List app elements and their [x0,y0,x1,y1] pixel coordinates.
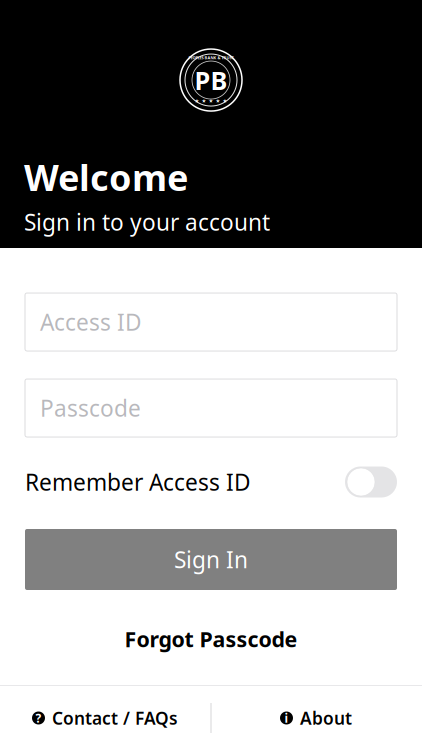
staticText: Remember Access ID [25,467,251,497]
button[interactable]: ? [0,686,210,750]
staticText: Sign in to your account [24,207,270,237]
staticText: Forgot Passcode [124,625,297,653]
staticText: Passcode [40,393,141,423]
staticText: i [284,710,288,726]
staticText: PEOPLES BANK & TRUST [188,55,233,60]
staticText: ? [35,710,41,726]
staticText: Sign In [174,544,248,574]
staticText: Contact / FAQs [52,706,178,729]
staticText: Access ID [40,307,142,337]
staticText: Welcome [24,153,188,201]
staticText: ★ ★ ★ ★ ★ [194,98,227,104]
button[interactable]: Forgot Passcode [25,627,397,651]
button[interactable]: Sign In [25,529,397,590]
staticText: About [300,706,352,729]
button[interactable]: i [210,686,422,750]
button[interactable]: Remember Access ID [25,465,397,499]
staticText: PB [194,63,227,97]
